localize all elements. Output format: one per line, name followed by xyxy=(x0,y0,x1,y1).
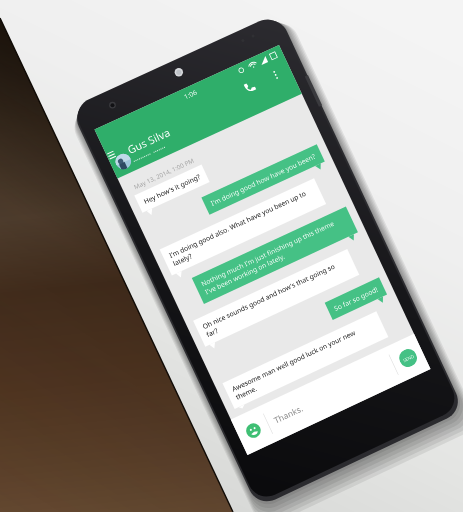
button[interactable]: Menu xyxy=(0,44,20,64)
button[interactable]: Hey how's it going? xyxy=(14,136,145,170)
button[interactable]: Awesome man well good luck on your new t… xyxy=(14,505,316,512)
staticText: Oh nice sounds good and how's that going… xyxy=(25,391,305,424)
staticText: I'm doing good how have you been? xyxy=(131,198,335,214)
staticText: I'm doing good also. What have you been … xyxy=(25,251,305,284)
button[interactable]: So far so good! xyxy=(239,452,346,486)
staticText: May 13, 2014, 1:00 PM xyxy=(20,115,136,130)
staticText: Nothing much I'm just finishing up this … xyxy=(55,321,335,354)
button[interactable]: Call xyxy=(266,30,298,62)
button[interactable]: Nothing much I'm just finishing up this … xyxy=(44,312,346,363)
button[interactable]: I'm doing good also. What have you been … xyxy=(14,242,316,293)
staticText: Hey how's it going? xyxy=(25,145,134,161)
staticText: So far so good! xyxy=(250,461,335,477)
button[interactable]: I'm doing good how have you been? xyxy=(120,189,346,223)
button[interactable]: Oh nice sounds good and how's that going… xyxy=(14,382,316,433)
